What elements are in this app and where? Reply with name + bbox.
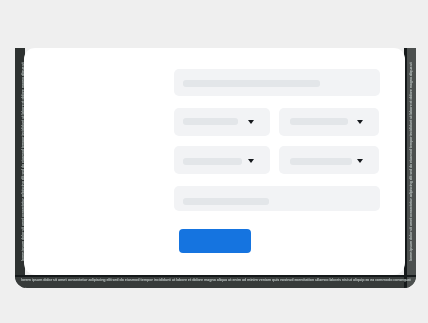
button[interactable]: Input field xyxy=(279,146,379,174)
button[interactable]: Input field xyxy=(174,69,380,96)
button[interactable]: Submit xyxy=(179,229,251,253)
button[interactable]: Input field xyxy=(174,146,270,174)
staticText: lorem ipsum dolor sit amet consectetur a… xyxy=(21,277,413,283)
button[interactable]: Input field xyxy=(174,108,270,136)
staticText: lorem ipsum dolor sit amet consectetur a… xyxy=(20,61,25,261)
button[interactable]: Input field xyxy=(279,108,379,136)
button[interactable]: Input field xyxy=(174,186,380,211)
staticText: lorem ipsum dolor sit amet consectetur a… xyxy=(408,61,413,261)
